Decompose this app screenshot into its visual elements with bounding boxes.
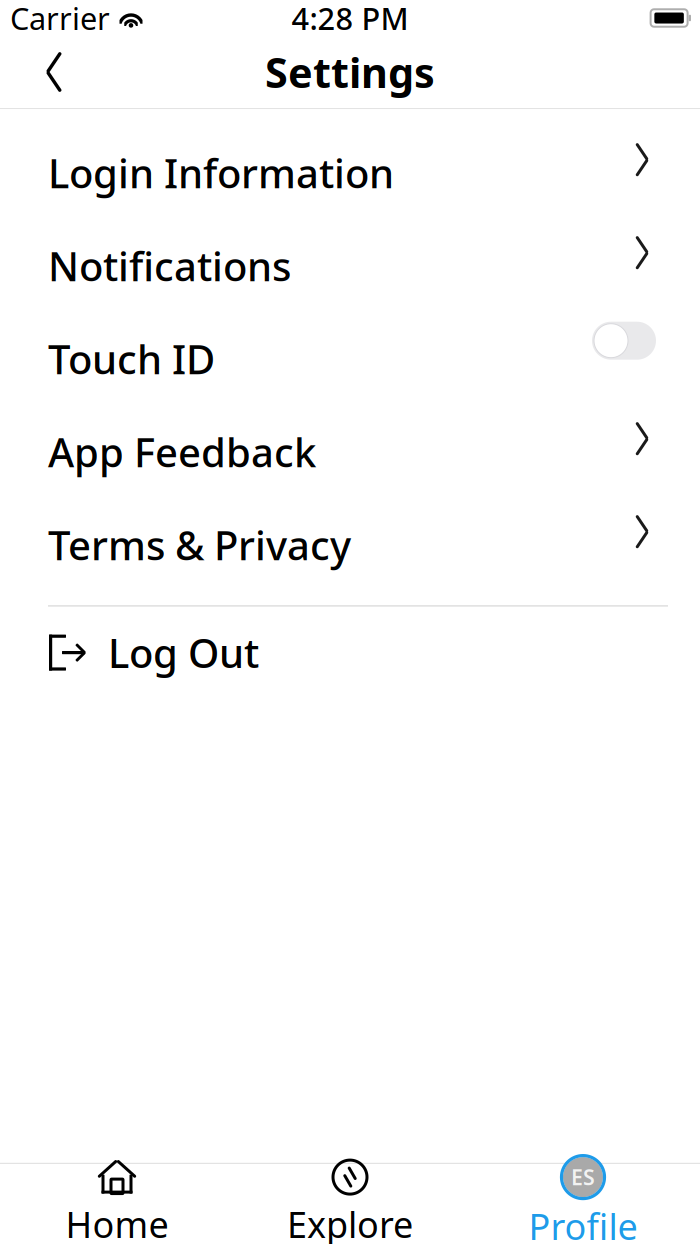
staticText: Settings [265,45,435,99]
button[interactable]: Touch ID [592,322,656,360]
staticText: Explore [287,1200,413,1244]
staticText: App Feedback [48,425,316,478]
button[interactable]: Back [26,38,82,106]
button[interactable]: Terms & Privacy [0,498,700,591]
button[interactable]: Explore [233,1164,466,1244]
button[interactable]: Home [0,1164,233,1244]
staticText: Home [65,1200,168,1244]
staticText: Login Information [48,146,394,199]
staticText: Notifications [48,239,291,292]
staticText: Profile [528,1202,637,1244]
staticText: Log Out [108,626,259,679]
staticText: Terms & Privacy [48,518,351,571]
button[interactable]: App Feedback [0,405,700,498]
button[interactable]: Log Out [0,607,700,699]
staticText: 4:28 PM [291,0,408,38]
staticText: ES [571,1163,595,1191]
button[interactable]: Login Information [0,126,700,219]
staticText: Touch ID [48,332,215,385]
button[interactable]: Notifications [0,219,700,312]
staticText: Carrier [10,0,110,38]
button[interactable]: ES [466,1164,699,1244]
